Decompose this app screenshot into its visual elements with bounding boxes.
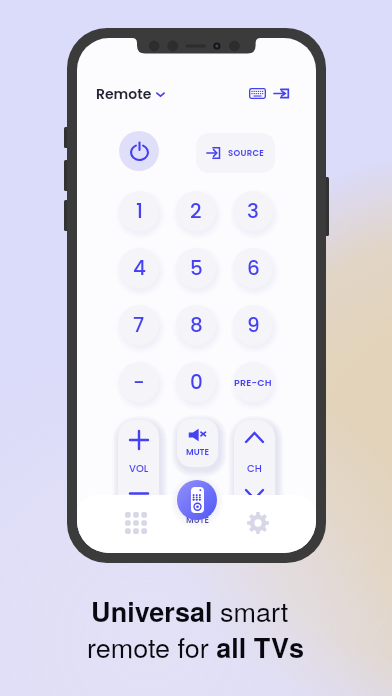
- staticText: VOL: [129, 461, 149, 475]
- button[interactable]: 6: [233, 248, 273, 288]
- staticText: -: [133, 368, 145, 396]
- button[interactable]: Keyboard: [247, 84, 268, 103]
- button[interactable]: 9: [233, 305, 273, 345]
- staticText: MUTE: [186, 446, 209, 458]
- button[interactable]: -: [119, 362, 159, 402]
- button[interactable]: 7: [119, 305, 159, 345]
- staticText: 8: [190, 311, 203, 339]
- staticText: CH: [247, 461, 262, 475]
- button[interactable]: PRE-CH: [233, 362, 273, 402]
- staticText: 2: [190, 197, 202, 225]
- staticText: 3: [247, 197, 259, 225]
- staticText: 6: [247, 254, 260, 282]
- button[interactable]: 1: [119, 191, 159, 231]
- staticText: 1: [136, 197, 143, 225]
- button[interactable]: VOL: [118, 420, 159, 518]
- button[interactable]: CH: [234, 420, 275, 518]
- staticText: 0: [190, 368, 203, 396]
- button[interactable]: Source input: [271, 84, 292, 103]
- staticText: 7: [133, 311, 145, 339]
- button[interactable]: Remote: [96, 84, 165, 104]
- staticText: 5: [190, 254, 203, 282]
- staticText: MUTE: [186, 514, 209, 526]
- staticText: remote for all TVs: [87, 627, 304, 666]
- button[interactable]: Remote: [177, 480, 217, 520]
- button[interactable]: 4: [119, 248, 159, 288]
- staticText: Universal smart: [91, 591, 289, 630]
- staticText: 4: [133, 254, 146, 282]
- button[interactable]: Settings: [247, 512, 269, 534]
- staticText: PRE-CH: [234, 376, 272, 389]
- button[interactable]: Keypad: [125, 512, 147, 534]
- button[interactable]: 0: [176, 362, 216, 402]
- button[interactable]: 8: [176, 305, 216, 345]
- button[interactable]: 2: [176, 191, 216, 231]
- button[interactable]: SOURCE: [196, 133, 275, 173]
- button[interactable]: MUTE: [177, 419, 218, 467]
- staticText: 9: [247, 311, 260, 339]
- button[interactable]: 3: [233, 191, 273, 231]
- button[interactable]: Power: [119, 131, 159, 171]
- staticText: SOURCE: [228, 147, 265, 159]
- staticText: Remote: [96, 84, 152, 104]
- button[interactable]: 5: [176, 248, 216, 288]
